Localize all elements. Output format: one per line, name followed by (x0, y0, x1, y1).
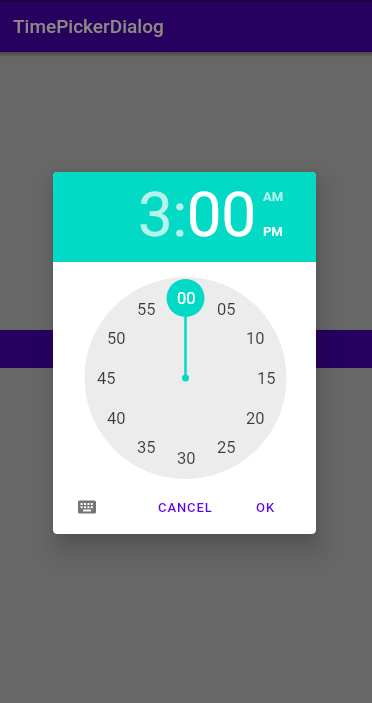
staticText: 15 (257, 369, 276, 388)
staticText: TimePickerDialog (13, 15, 164, 37)
staticText: 00 (177, 289, 196, 308)
button[interactable]: 50 (98, 320, 134, 356)
button[interactable]: 55 (128, 291, 164, 327)
button[interactable]: 25 (208, 429, 244, 465)
button[interactable]: PM (253, 219, 293, 243)
staticText: 30 (177, 449, 196, 468)
staticText: OK (256, 500, 275, 515)
staticText: 10 (246, 329, 265, 348)
staticText: 45 (97, 369, 116, 388)
staticText: 05 (217, 300, 236, 319)
staticText: 55 (137, 300, 156, 319)
staticText: 3:00 (138, 178, 256, 251)
button[interactable]: OK (241, 489, 289, 525)
staticText: AM (263, 189, 284, 204)
button[interactable]: CANCEL (140, 489, 230, 525)
staticText: PM (263, 224, 283, 239)
button[interactable]: 35 (128, 429, 164, 465)
staticText: CANCEL (158, 500, 213, 515)
staticText: 40 (107, 409, 126, 428)
button[interactable]: AM (253, 184, 293, 208)
button[interactable]: 05 (208, 291, 244, 327)
button[interactable]: 15 (248, 360, 284, 396)
button[interactable]: 30 (168, 440, 204, 476)
button[interactable]: 20 (237, 400, 273, 436)
staticText: 20 (246, 409, 265, 428)
button[interactable] (73, 495, 101, 519)
button[interactable]: 3:00 (87, 172, 307, 259)
button[interactable]: 45 (88, 360, 124, 396)
staticText: 25 (217, 438, 236, 457)
button[interactable]: 40 (98, 400, 134, 436)
button[interactable]: 10 (237, 320, 273, 356)
staticText: 50 (107, 329, 126, 348)
staticText: 35 (137, 438, 156, 457)
button[interactable]: 00 (168, 280, 204, 316)
